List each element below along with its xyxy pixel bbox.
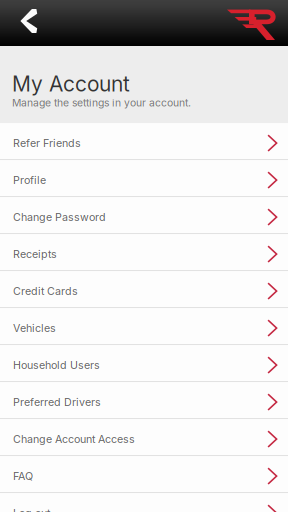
button[interactable]: Back: [0, 0, 54, 46]
staticText: FAQ: [13, 470, 33, 482]
staticText: Household Users: [13, 359, 100, 371]
staticText: Change Password: [13, 211, 106, 223]
button[interactable]: Vehicles: [0, 308, 288, 345]
button[interactable]: Change Account Access: [0, 419, 288, 456]
button[interactable]: Change Password: [0, 197, 288, 234]
staticText: Vehicles: [13, 322, 56, 334]
staticText: Receipts: [13, 248, 57, 260]
button[interactable]: Receipts: [0, 234, 288, 271]
button[interactable]: Credit Cards: [0, 271, 288, 308]
staticText: Credit Cards: [13, 285, 78, 297]
button[interactable]: FAQ: [0, 456, 288, 493]
button[interactable]: Household Users: [0, 345, 288, 382]
staticText: Preferred Drivers: [13, 396, 101, 408]
staticText: Manage the settings in your account.: [12, 96, 191, 109]
button[interactable]: Refer Friends: [0, 123, 288, 160]
staticText: Change Account Access: [13, 433, 135, 445]
staticText: Log out: [13, 507, 50, 512]
staticText: Profile: [13, 174, 46, 186]
staticText: My Account: [12, 71, 130, 96]
button[interactable]: Preferred Drivers: [0, 382, 288, 419]
button[interactable]: Log out: [0, 493, 288, 512]
button[interactable]: Profile: [0, 160, 288, 197]
staticText: Refer Friends: [13, 137, 81, 149]
